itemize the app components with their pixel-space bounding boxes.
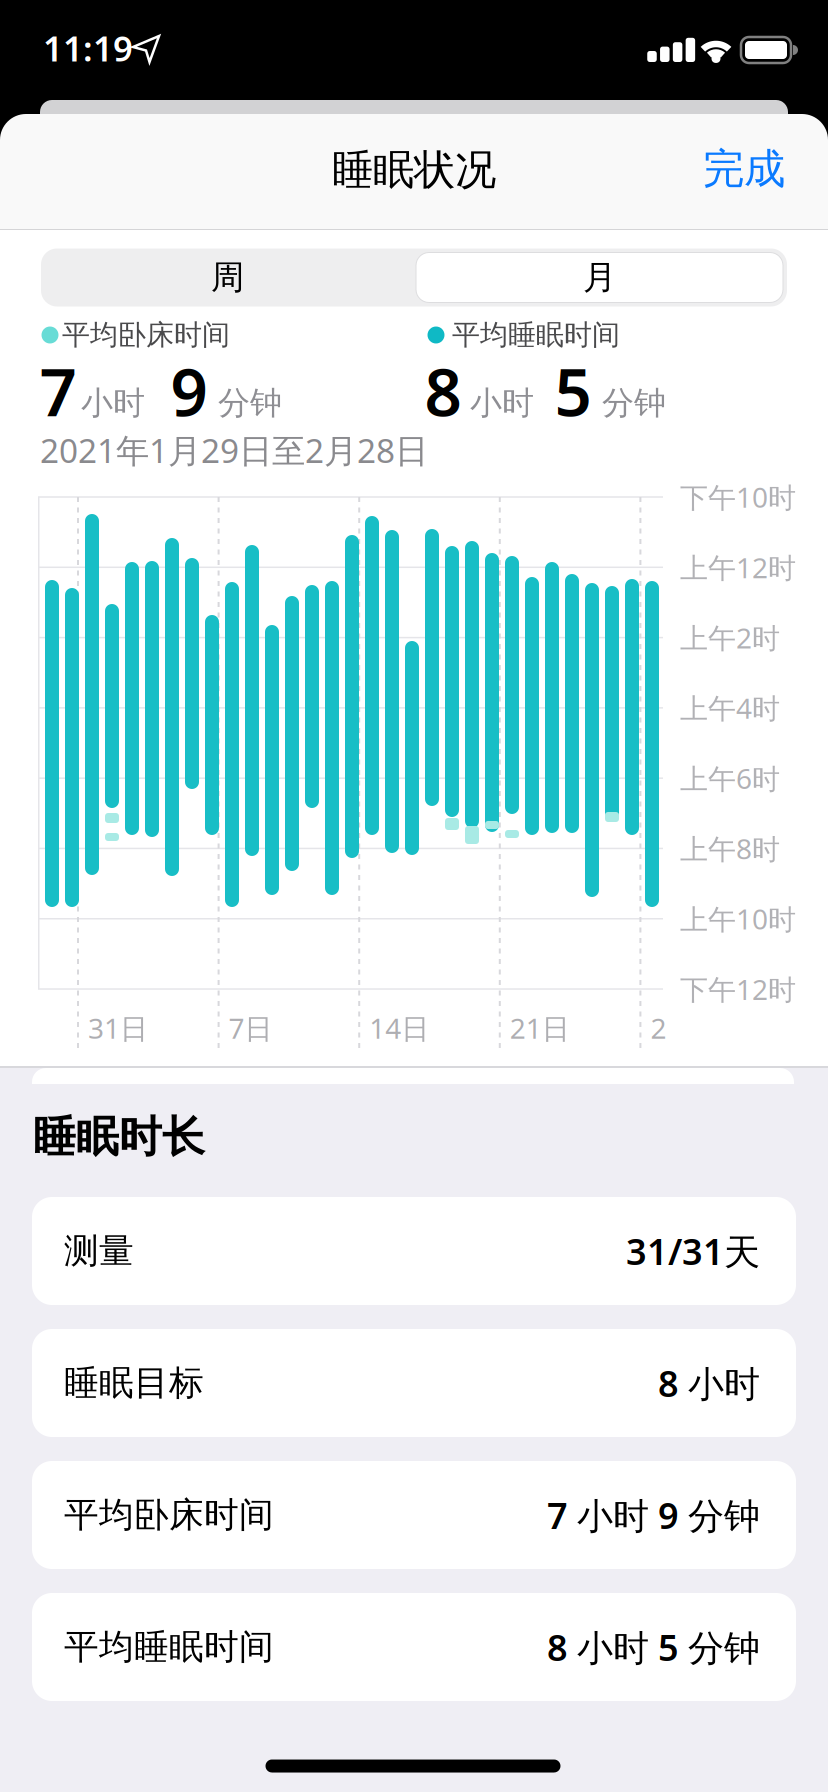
button[interactable]: 睡眠目标 — [32, 1329, 796, 1437]
staticText: 31日 — [88, 1009, 148, 1047]
staticText: 下午10时 — [680, 478, 796, 516]
staticText: 睡眠状况 — [332, 145, 496, 195]
staticText: 小时 — [81, 383, 145, 423]
button[interactable]: 测量 — [32, 1197, 796, 1305]
staticText: 2021年1月29日至2月28日 — [40, 428, 428, 472]
staticText: 8 小时 — [658, 1359, 760, 1407]
staticText: 测量 — [64, 1230, 134, 1272]
staticText: 分钟 — [602, 383, 666, 423]
staticText: 平均卧床时间 — [62, 318, 230, 352]
staticText: 8 — [424, 348, 461, 434]
staticText: 7 — [39, 348, 76, 434]
staticText: 完成 — [703, 144, 785, 194]
staticText: 睡眠目标 — [64, 1362, 204, 1404]
staticText: 下午12时 — [680, 970, 796, 1008]
staticText: 9 — [170, 348, 207, 434]
button[interactable]: 完成 — [684, 139, 804, 199]
staticText: 21日 — [510, 1009, 570, 1047]
staticText: 2 — [650, 1009, 666, 1047]
staticText: 睡眠时长 — [33, 1111, 205, 1163]
staticText: 7 小时 9 分钟 — [547, 1491, 760, 1539]
staticText: 分钟 — [218, 383, 282, 423]
staticText: 5 — [554, 348, 591, 434]
staticText: 上午4时 — [680, 689, 780, 726]
staticText: 11:19 — [43, 25, 133, 71]
staticText: 小时 — [470, 383, 534, 423]
button[interactable]: 平均睡眠时间 — [32, 1593, 796, 1701]
staticText: 周 — [211, 257, 244, 298]
staticText: 上午2时 — [680, 619, 780, 656]
staticText: 8 小时 5 分钟 — [547, 1623, 760, 1671]
staticText: 上午10时 — [680, 900, 796, 937]
staticText: 平均睡眠时间 — [64, 1626, 274, 1668]
staticText: 月 — [583, 257, 616, 298]
staticText: 平均卧床时间 — [64, 1494, 274, 1536]
staticText: 上午8时 — [680, 830, 780, 867]
button[interactable]: 平均卧床时间 — [32, 1461, 796, 1569]
staticText: 14日 — [369, 1009, 429, 1047]
button[interactable]: 周 — [42, 248, 412, 306]
staticText: 平均睡眠时间 — [452, 318, 620, 352]
staticText: 7日 — [229, 1009, 273, 1047]
staticText: 上午12时 — [680, 549, 796, 586]
button[interactable]: 月 — [415, 248, 783, 306]
staticText: 31/31天 — [626, 1227, 760, 1275]
staticText: 上午6时 — [680, 760, 780, 797]
